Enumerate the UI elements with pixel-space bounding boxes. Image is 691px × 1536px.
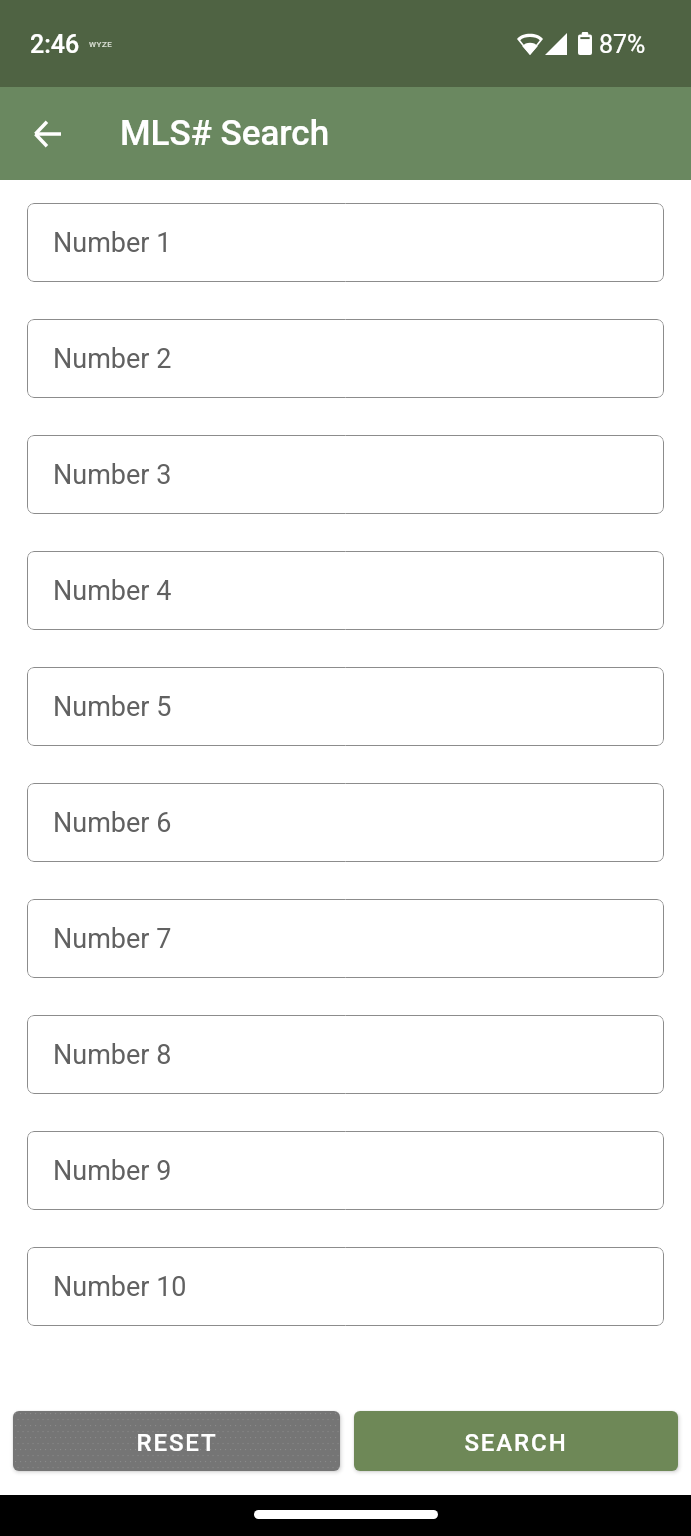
button[interactable]: Number 5	[27, 667, 664, 746]
button[interactable]: Number 3	[27, 435, 664, 514]
button[interactable]: Number 9	[27, 1131, 664, 1210]
button[interactable]: Number 4	[27, 551, 664, 630]
staticText: Number 7	[53, 923, 172, 955]
staticText: 87%	[599, 30, 646, 59]
staticText: Number 5	[53, 691, 172, 723]
button[interactable]: Number 1	[27, 203, 664, 282]
staticText: RESET	[136, 1429, 218, 1457]
staticText: Number 6	[53, 807, 172, 839]
staticText: 2:46	[30, 30, 80, 59]
staticText: WYZE	[89, 40, 113, 49]
staticText: Number 2	[53, 343, 172, 375]
button[interactable]: Number 10	[27, 1247, 664, 1326]
button[interactable]: Number 2	[27, 319, 664, 398]
button[interactable]: SEARCH	[354, 1411, 678, 1471]
staticText: SEARCH	[464, 1429, 568, 1457]
button[interactable]: Number 8	[27, 1015, 664, 1094]
button[interactable]: Number 7	[27, 899, 664, 978]
staticText: Number 4	[53, 575, 172, 607]
staticText: Number 10	[53, 1271, 187, 1303]
button[interactable]: RESET	[13, 1411, 340, 1471]
button[interactable]: Number 6	[27, 783, 664, 862]
staticText: MLS# Search	[120, 113, 330, 154]
staticText: Number 3	[53, 459, 172, 491]
staticText: Number 1	[53, 227, 172, 259]
staticText: Number 8	[53, 1039, 172, 1071]
button[interactable]: Back	[14, 101, 80, 167]
staticText: Number 9	[53, 1155, 172, 1187]
